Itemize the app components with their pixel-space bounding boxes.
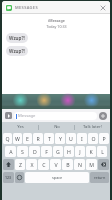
staticText: L xyxy=(101,148,104,155)
staticText: D xyxy=(33,148,37,155)
button[interactable]: Y xyxy=(55,133,65,144)
button[interactable]: Wzup?! xyxy=(6,33,28,43)
staticText: P xyxy=(102,135,106,142)
staticText: O xyxy=(91,135,96,142)
staticText: F xyxy=(45,148,48,155)
button[interactable]: E xyxy=(23,133,32,144)
button[interactable]: I xyxy=(77,133,87,144)
staticText: C xyxy=(42,161,46,168)
button[interactable]: J xyxy=(75,146,85,157)
staticText: S xyxy=(21,148,24,155)
button[interactable]: G xyxy=(53,146,63,157)
staticText: I xyxy=(81,135,83,142)
button[interactable]: Q xyxy=(3,133,12,144)
button[interactable]: S xyxy=(17,146,28,157)
button[interactable]: space xyxy=(25,172,89,183)
button[interactable]: Return xyxy=(90,172,109,183)
staticText: T xyxy=(48,135,51,142)
staticText: M xyxy=(89,161,94,168)
staticText: J xyxy=(79,148,81,155)
button[interactable]: Send xyxy=(99,112,107,120)
button[interactable]: N xyxy=(74,159,85,170)
button[interactable]: M xyxy=(86,159,97,170)
staticText: X xyxy=(30,161,34,168)
staticText: Wzup?! xyxy=(9,35,25,41)
button[interactable]: L xyxy=(97,146,107,157)
button[interactable]: Emoji xyxy=(15,172,24,183)
staticText: Q xyxy=(5,135,10,142)
button[interactable]: No xyxy=(39,122,74,132)
staticText: Message xyxy=(18,113,36,119)
staticText: MESSAGES xyxy=(15,5,38,10)
button[interactable]: Shift xyxy=(3,159,14,170)
button[interactable]: Messages app xyxy=(5,4,12,11)
button[interactable]: Close xyxy=(98,3,107,12)
staticText: Z xyxy=(19,161,22,168)
button[interactable]: Yes xyxy=(2,122,38,132)
button[interactable]: W xyxy=(13,133,22,144)
staticText: E xyxy=(26,135,29,142)
staticText: W xyxy=(15,135,20,142)
staticText: A xyxy=(9,148,13,155)
button[interactable]: F xyxy=(41,146,52,157)
staticText: return xyxy=(94,175,106,180)
staticText: Talk later! xyxy=(83,124,102,130)
button[interactable]: U xyxy=(66,133,76,144)
button[interactable]: Numbers xyxy=(3,172,14,183)
staticText: Y xyxy=(59,135,62,142)
button[interactable]: Message xyxy=(14,112,97,120)
button[interactable]: X xyxy=(26,159,37,170)
staticText: N xyxy=(78,161,82,168)
button[interactable]: R xyxy=(33,133,43,144)
staticText: B xyxy=(66,161,70,168)
staticText: 123 xyxy=(5,175,12,180)
button[interactable]: B xyxy=(62,159,73,170)
staticText: No xyxy=(54,124,60,130)
staticText: V xyxy=(54,161,58,168)
button[interactable]: D xyxy=(29,146,40,157)
button[interactable]: A xyxy=(5,146,16,157)
button[interactable]: V xyxy=(50,159,61,170)
staticText: Today 10:33 xyxy=(46,24,67,29)
button[interactable]: C xyxy=(38,159,49,170)
button[interactable]: Z xyxy=(15,159,25,170)
button[interactable]: T xyxy=(44,133,54,144)
button[interactable]: Talk later! xyxy=(75,122,110,132)
button[interactable]: Wzup?! xyxy=(6,46,28,56)
staticText: U xyxy=(69,135,73,142)
button[interactable]: App store xyxy=(5,112,12,119)
button[interactable]: H xyxy=(64,146,74,157)
button[interactable]: K xyxy=(86,146,96,157)
staticText: G xyxy=(56,148,60,155)
staticText: H xyxy=(67,148,71,155)
staticText: space xyxy=(52,175,63,180)
button[interactable]: Backspace xyxy=(98,159,109,170)
button[interactable]: O xyxy=(88,133,98,144)
button[interactable]: P xyxy=(99,133,109,144)
staticText: iMessage xyxy=(48,18,65,23)
staticText: R xyxy=(36,135,40,142)
staticText: Yes xyxy=(17,124,24,130)
staticText: K xyxy=(89,148,93,155)
staticText: Wzup?! xyxy=(9,48,25,54)
